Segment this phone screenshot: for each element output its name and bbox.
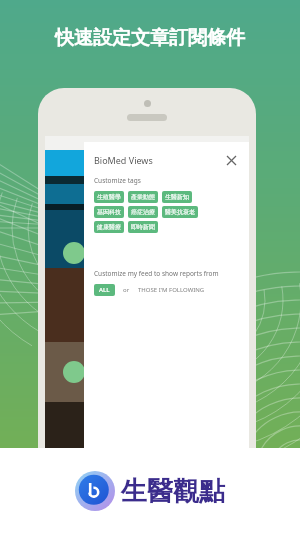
button[interactable]: Close xyxy=(223,152,239,168)
button[interactable]: 醫美抗衰老 xyxy=(162,206,198,218)
button[interactable]: 健康醫療 xyxy=(94,221,124,233)
staticText: BioMed Views xyxy=(94,154,153,166)
button[interactable]: 生殖醫學 xyxy=(94,191,124,203)
staticText: 基因科技 xyxy=(97,208,121,216)
staticText: ALL xyxy=(99,286,110,294)
button[interactable]: 癌症治療 xyxy=(128,206,158,218)
staticText: 醫美抗衰老 xyxy=(165,208,195,216)
staticText: 生殖醫學 xyxy=(97,193,121,201)
button[interactable]: 產業動態 xyxy=(128,191,158,203)
staticText: or xyxy=(123,286,130,294)
staticText: Customize tags xyxy=(94,176,141,185)
staticText: 癌症治療 xyxy=(131,208,155,216)
button[interactable]: 即時新聞 xyxy=(128,221,158,233)
staticText: 快速設定文章訂閱條件 xyxy=(55,26,245,50)
button[interactable]: THOSE I'M FOLLOWING xyxy=(138,284,205,296)
staticText: 健康醫療 xyxy=(97,223,121,231)
staticText: 產業動態 xyxy=(131,193,155,201)
staticText: 生醫觀點 xyxy=(121,475,225,508)
button[interactable]: 生醫新知 xyxy=(162,191,192,203)
button[interactable]: ALL xyxy=(94,284,115,296)
button[interactable]: 基因科技 xyxy=(94,206,124,218)
staticText: THOSE I'M FOLLOWING xyxy=(138,286,205,294)
staticText: 即時新聞 xyxy=(131,223,155,231)
staticText: Customize my feed to show reports from xyxy=(94,269,219,278)
staticText: 生醫新知 xyxy=(165,193,189,201)
